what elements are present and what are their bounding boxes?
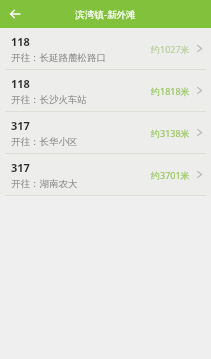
staticText: 约1027米 bbox=[151, 43, 190, 55]
staticText: 约3701米 bbox=[151, 169, 190, 181]
staticText: 118 bbox=[11, 34, 30, 49]
staticText: 约1818米 bbox=[151, 85, 190, 97]
button[interactable]: Back bbox=[0, 0, 30, 28]
staticText: 开往：长延路麓松路口 bbox=[11, 52, 106, 64]
staticText: 滨湾镇-新外滩 bbox=[75, 8, 136, 21]
staticText: 约3138米 bbox=[151, 127, 190, 139]
button[interactable]: 317 bbox=[0, 154, 211, 196]
staticText: 317 bbox=[11, 160, 30, 175]
staticText: 开往：长沙火车站 bbox=[11, 94, 87, 106]
button[interactable]: 317 bbox=[0, 112, 211, 154]
staticText: 开往：湖南农大 bbox=[11, 178, 78, 190]
button[interactable]: 118 bbox=[0, 70, 211, 112]
staticText: 开往：长华小区 bbox=[11, 136, 78, 148]
button[interactable]: 118 bbox=[0, 28, 211, 70]
staticText: 317 bbox=[11, 118, 30, 133]
staticText: 118 bbox=[11, 76, 30, 91]
